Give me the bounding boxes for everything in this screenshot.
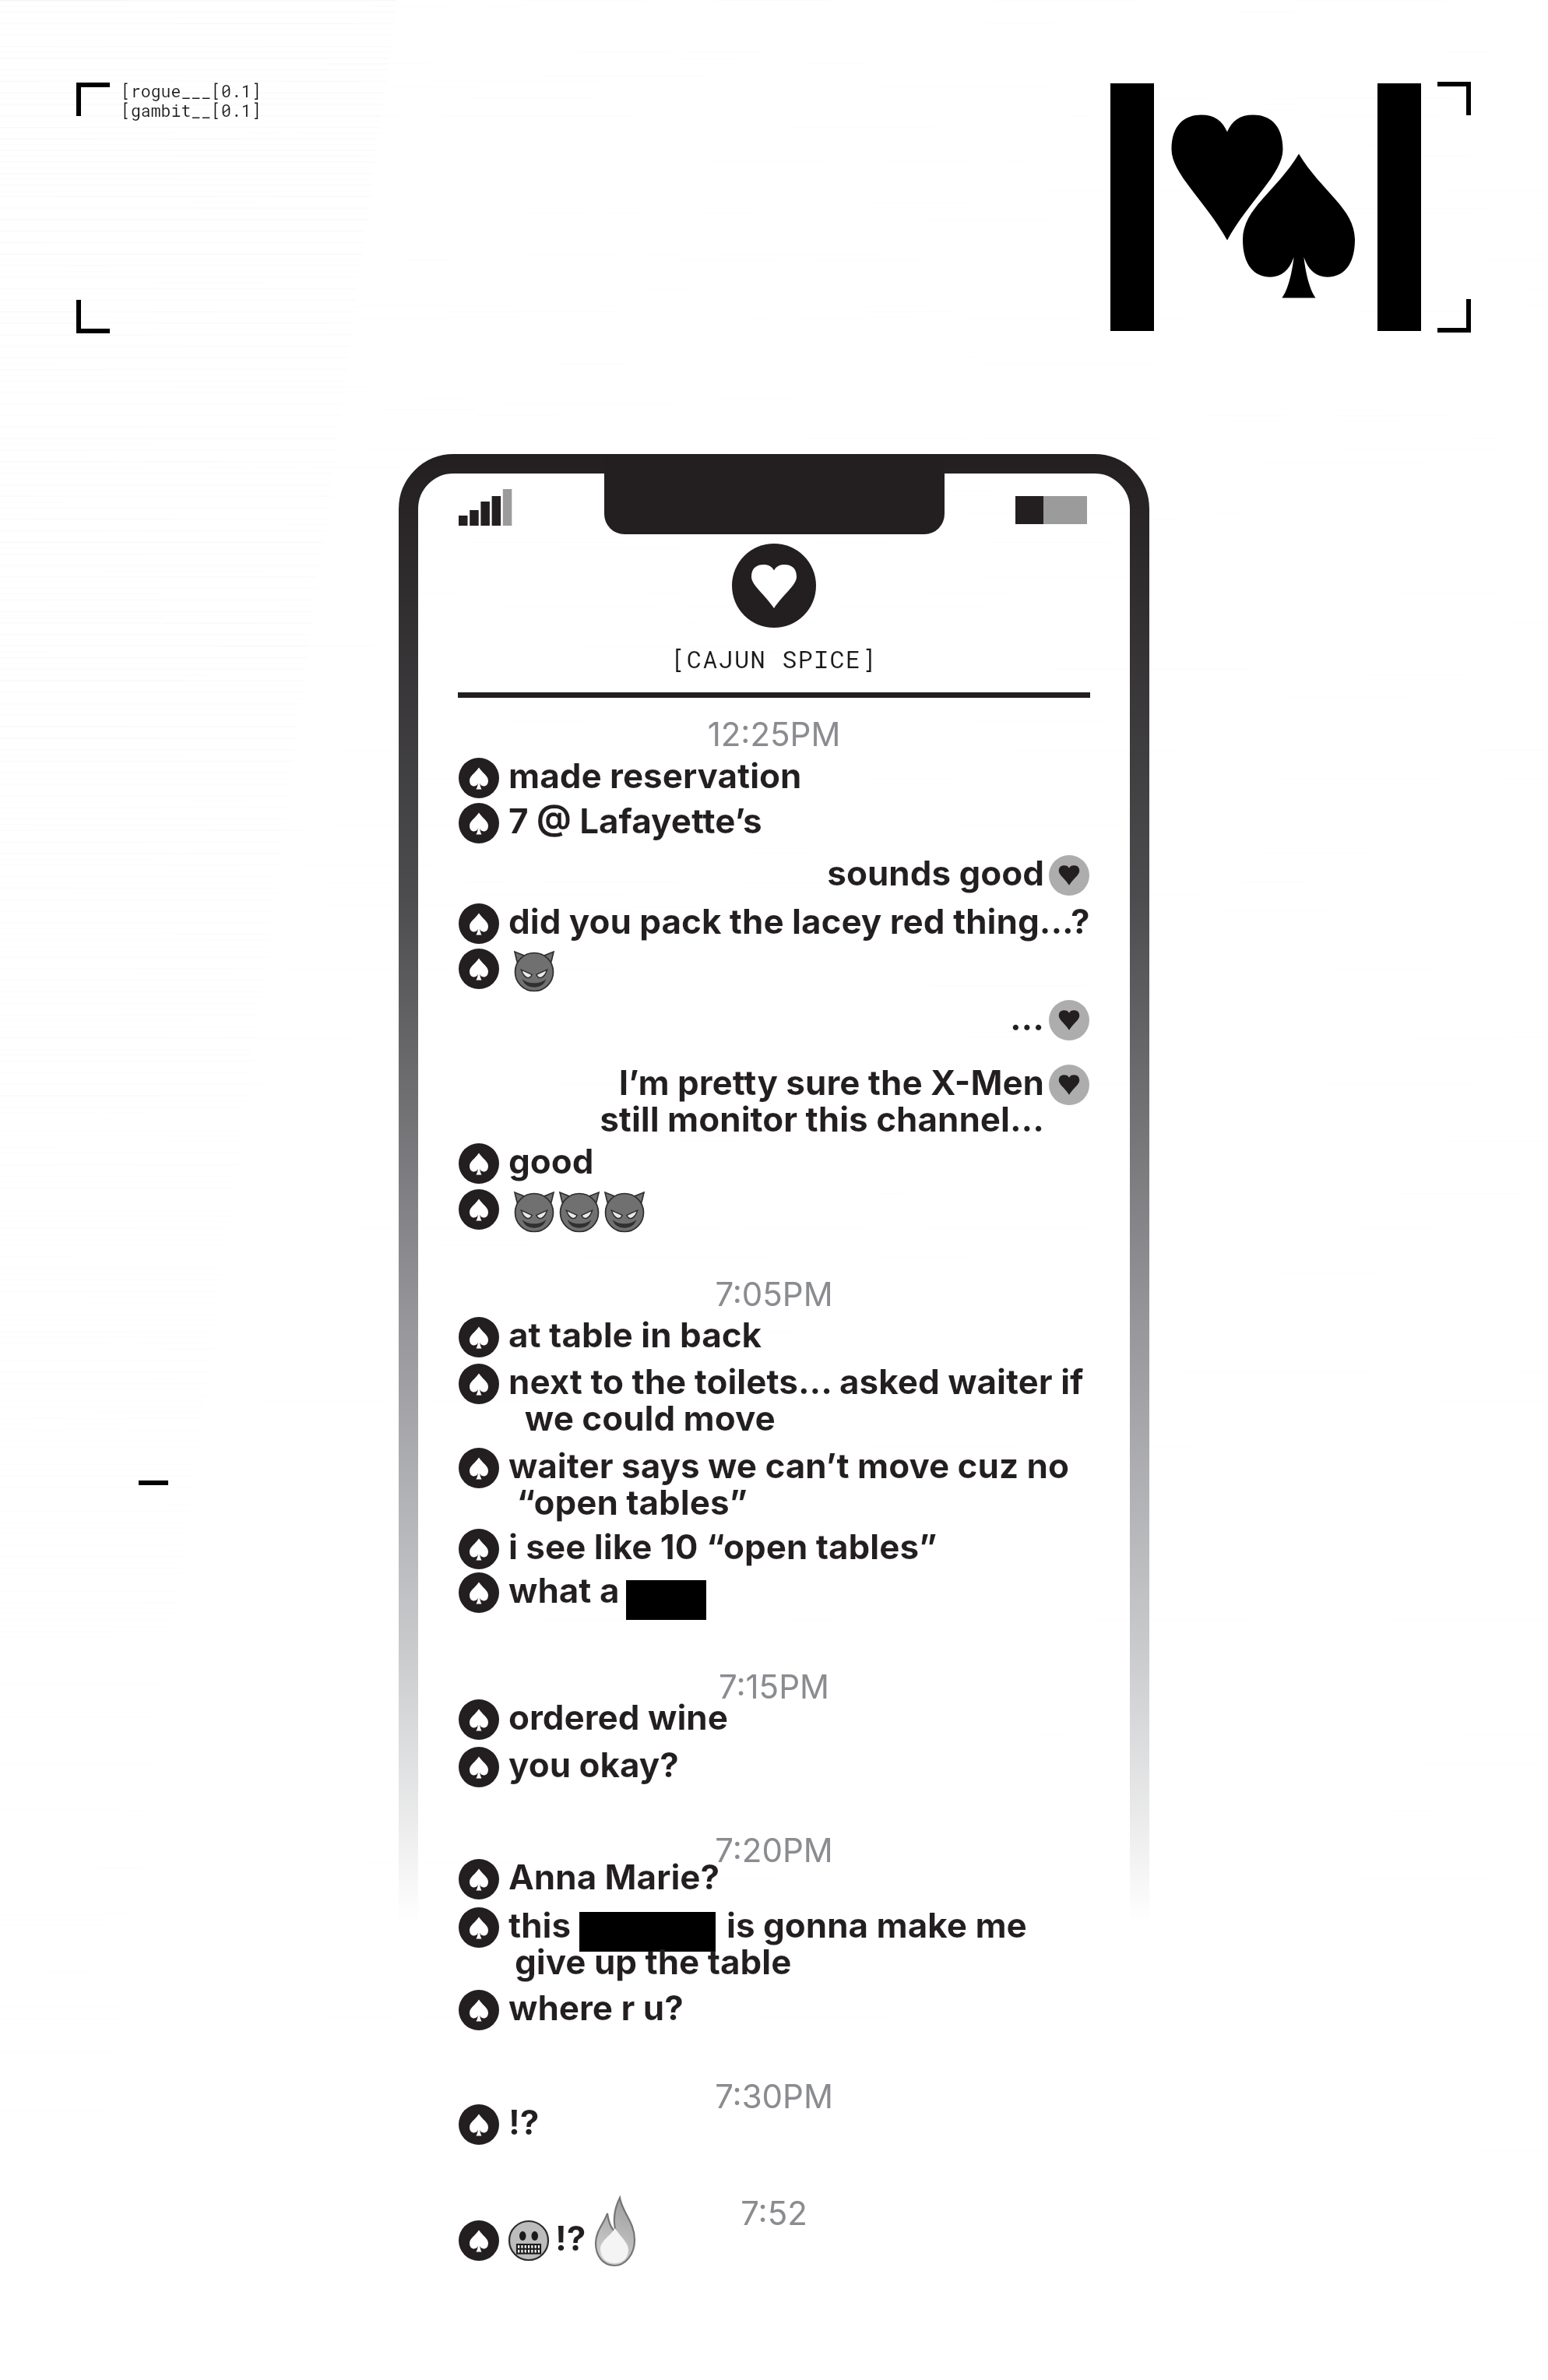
button[interactable]: Gambit avatar: [459, 1907, 499, 1948]
button[interactable]: Rogue avatar: [1049, 1065, 1089, 1105]
button[interactable]: 7 @ Lafayette’s: [508, 800, 762, 841]
button[interactable]: this: [508, 1904, 579, 1945]
button[interactable]: Gambit avatar: [459, 1572, 499, 1613]
staticText: [gambit__[0.1]: [121, 99, 262, 121]
button[interactable]: at table in back: [508, 1314, 762, 1355]
button[interactable]: waiter says we can’t move cuz no “open t…: [508, 1445, 1069, 1523]
button[interactable]: Gambit avatar: [459, 758, 499, 798]
staticText: 12:25PM: [458, 714, 1090, 754]
button[interactable]: ordered wine: [508, 1696, 728, 1737]
button[interactable]: what a: [508, 1569, 628, 1611]
button[interactable]: i see like 10 “open tables”: [508, 1526, 938, 1567]
button[interactable]: where r u?: [508, 1987, 684, 2028]
button[interactable]: Gambit avatar: [459, 1143, 499, 1184]
button[interactable]: Smiling devil emoji: [515, 944, 560, 994]
button[interactable]: !?: [555, 2217, 586, 2259]
button[interactable]: Redacted word: [626, 1580, 706, 1620]
button[interactable]: you okay?: [508, 1744, 679, 1785]
button[interactable]: Gambit avatar: [459, 1747, 499, 1787]
button[interactable]: did you pack the lacey red thing...?: [508, 900, 1090, 942]
button[interactable]: Gambit avatar: [459, 2220, 499, 2261]
button[interactable]: Gambit avatar: [459, 1529, 499, 1569]
button[interactable]: Gambit avatar: [459, 2104, 499, 2145]
button[interactable]: good: [508, 1140, 594, 1181]
button[interactable]: Gambit avatar: [459, 949, 499, 989]
staticText: 7:05PM: [458, 1274, 1090, 1314]
button[interactable]: next to the toilets... asked waiter if w…: [508, 1361, 1084, 1438]
staticText: 7:15PM: [458, 1667, 1090, 1706]
button[interactable]: Smiling devil emoji: [515, 1185, 650, 1234]
button[interactable]: Gambit avatar: [459, 1990, 499, 2030]
button[interactable]: Fire emoji: [594, 2197, 638, 2267]
staticText: 7:30PM: [458, 2076, 1090, 2116]
staticText: 7:20PM: [458, 1830, 1090, 1870]
button[interactable]: Redacted word: [579, 1912, 716, 1952]
button[interactable]: Chat profile: [732, 544, 816, 628]
button[interactable]: is gonna make me: [727, 1904, 1027, 1945]
staticText: 7:52: [458, 2193, 1090, 2233]
button[interactable]: Grimacing face emoji: [508, 2219, 552, 2262]
button[interactable]: sounds good: [467, 852, 1044, 893]
button[interactable]: made reservation: [508, 755, 802, 796]
button[interactable]: Gambit avatar: [459, 903, 499, 944]
button[interactable]: Rogue avatar: [1049, 1000, 1089, 1040]
other: Masthead: [0, 0, 1548, 2380]
button[interactable]: Gambit avatar: [459, 1699, 499, 1740]
button[interactable]: Anna Marie?: [508, 1856, 720, 1897]
button[interactable]: Gambit avatar: [459, 1448, 499, 1488]
staticText: [rogue___[0.1]: [121, 79, 262, 101]
button[interactable]: ...: [467, 997, 1044, 1038]
button[interactable]: give up the table: [515, 1941, 792, 1982]
button[interactable]: Gambit avatar: [459, 1364, 499, 1404]
button[interactable]: !?: [508, 2101, 540, 2142]
button[interactable]: Gambit avatar: [459, 1859, 499, 1899]
button[interactable]: [CAJUN SPICE]: [458, 642, 1090, 674]
button[interactable]: Gambit avatar: [459, 1189, 499, 1230]
button[interactable]: Gambit avatar: [459, 1317, 499, 1357]
button[interactable]: Rogue avatar: [1049, 855, 1089, 896]
button[interactable]: Gambit avatar: [459, 803, 499, 843]
button[interactable]: I’m pretty sure the X-Men still monitor …: [467, 1061, 1044, 1139]
